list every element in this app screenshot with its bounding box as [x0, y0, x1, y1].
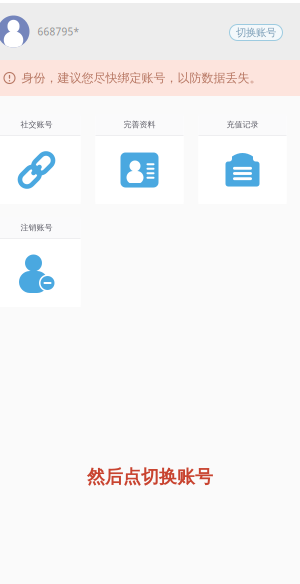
- button[interactable]: 完善资料: [95, 114, 183, 204]
- button[interactable]: 切换账号: [229, 23, 282, 39]
- staticText: 完善资料: [123, 119, 155, 130]
- staticText: 注销账号: [20, 222, 52, 233]
- button[interactable]: 社交账号: [0, 114, 80, 204]
- button[interactable]: 充值记录: [198, 114, 286, 204]
- staticText: 身份，建议您尽快绑定账号，以防数据丢失。: [21, 70, 261, 85]
- staticText: 社交账号: [20, 119, 52, 130]
- staticText: 668795*: [37, 25, 79, 38]
- staticText: 充值记录: [226, 119, 258, 130]
- staticText: 然后点切换账号: [87, 465, 213, 488]
- button[interactable]: 注销账号: [0, 217, 80, 307]
- staticText: 切换账号: [236, 26, 276, 39]
